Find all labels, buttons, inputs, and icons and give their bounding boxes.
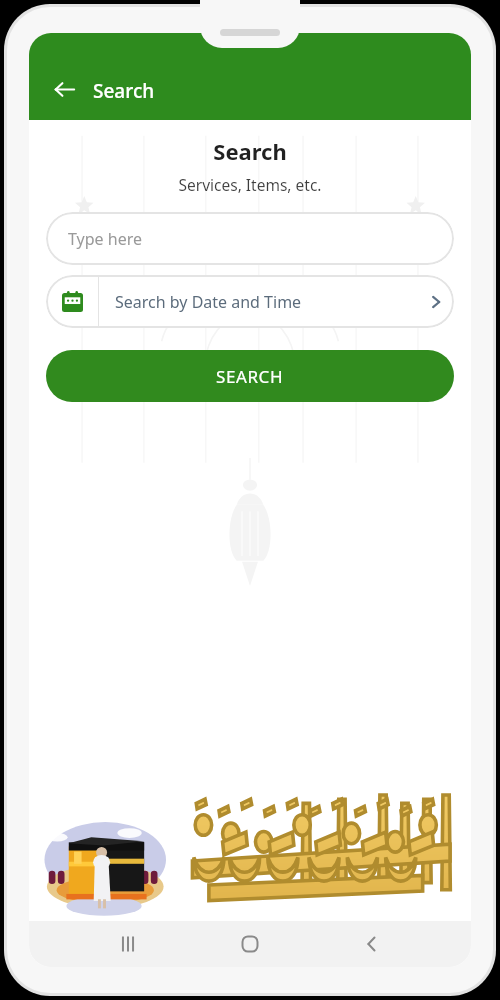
button[interactable]: Back bbox=[349, 921, 395, 967]
staticText: SEARCH bbox=[216, 365, 284, 388]
staticText: Services, Items, etc. bbox=[29, 174, 471, 195]
button[interactable]: SEARCH bbox=[46, 350, 454, 402]
button[interactable]: Search by Date and Time bbox=[46, 275, 454, 328]
staticText: Type here bbox=[68, 228, 142, 250]
staticText: Search bbox=[29, 136, 471, 166]
staticText: Search by Date and Time bbox=[115, 291, 418, 313]
button[interactable]: Home bbox=[227, 921, 273, 967]
button[interactable]: Type here bbox=[46, 212, 454, 265]
staticText: Search bbox=[93, 78, 155, 104]
button[interactable]: Back bbox=[47, 72, 81, 106]
button[interactable]: Recents bbox=[105, 921, 151, 967]
